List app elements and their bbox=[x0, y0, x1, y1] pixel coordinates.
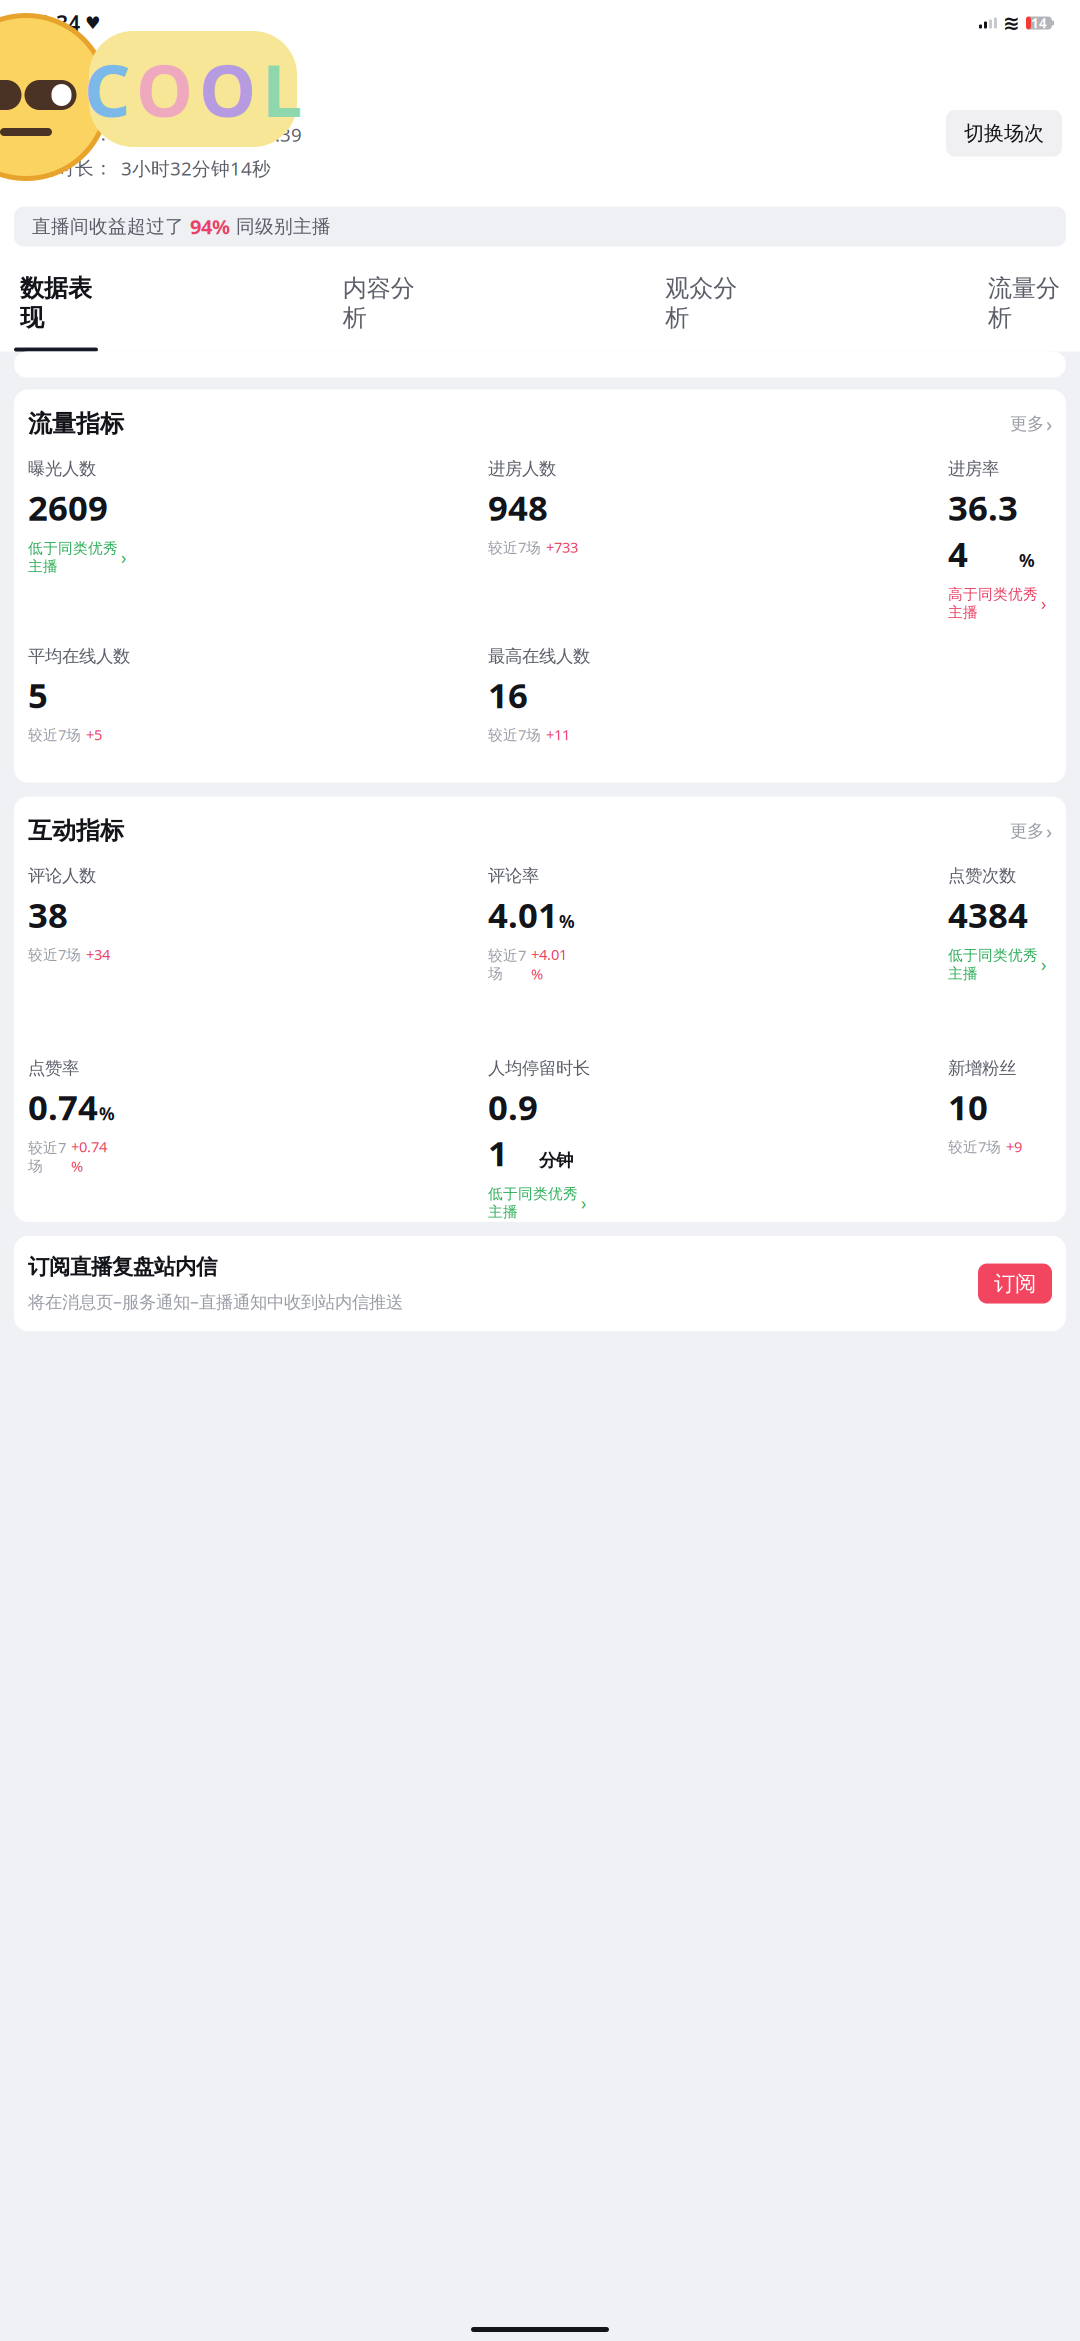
staticText: 直播间收益超过了 bbox=[32, 215, 190, 238]
staticText: +11 bbox=[546, 725, 570, 744]
staticText: % bbox=[559, 910, 575, 933]
button[interactable]: 更多 bbox=[1000, 815, 1052, 847]
button[interactable]: 订阅 bbox=[978, 1263, 1052, 1303]
staticText: 切换场次 bbox=[964, 121, 1044, 146]
staticText: 13:34 bbox=[26, 9, 80, 37]
staticText: 14 bbox=[1031, 14, 1047, 32]
staticText: › bbox=[121, 546, 126, 569]
staticText: 2609 bbox=[28, 484, 108, 530]
staticText: ♥ bbox=[85, 13, 101, 33]
staticText: 16 bbox=[488, 672, 528, 718]
staticText: › bbox=[1041, 592, 1046, 615]
staticText: 流量分析 bbox=[988, 274, 1060, 333]
staticText: 最高在线人数 bbox=[488, 645, 590, 667]
button[interactable]: 流量分析 bbox=[982, 261, 1066, 346]
button[interactable]: 内容分析 bbox=[337, 261, 421, 346]
staticText: O bbox=[136, 41, 193, 137]
staticText: 更多 bbox=[1010, 413, 1044, 434]
staticText: 4384 bbox=[948, 891, 1028, 937]
staticText: 较近7场 bbox=[488, 945, 526, 983]
staticText: 开播时长： bbox=[18, 157, 113, 180]
staticText: 点赞次数 bbox=[948, 865, 1016, 886]
staticText: 低于同类优秀主播 bbox=[488, 1185, 578, 1221]
button[interactable]: 切换场次 bbox=[946, 110, 1062, 157]
staticText: › bbox=[1041, 953, 1046, 976]
staticText: 进房率 bbox=[948, 458, 999, 479]
staticText: +733 bbox=[546, 537, 578, 557]
staticText: 10 bbox=[948, 1084, 988, 1130]
staticText: 36.34 bbox=[948, 484, 1018, 576]
staticText: 流量指标 bbox=[28, 409, 124, 439]
staticText: 0.91 bbox=[488, 1084, 538, 1176]
staticText: % bbox=[1019, 549, 1035, 572]
button[interactable]: 低于同类优秀主播 bbox=[488, 1183, 586, 1223]
staticText: O bbox=[199, 41, 256, 137]
staticText: 2025-10-10 23:47:39 bbox=[121, 122, 302, 147]
staticText: 互动指标 bbox=[28, 816, 124, 846]
button[interactable]: 低于同类优秀主播 bbox=[948, 944, 1046, 984]
staticText: 点赞率 bbox=[28, 1057, 79, 1079]
staticText: › bbox=[1046, 818, 1052, 844]
staticText: 进房人数 bbox=[488, 458, 556, 479]
staticText: 低于同类优秀主播 bbox=[948, 946, 1038, 982]
staticText: C bbox=[84, 41, 130, 137]
staticText: 开播时间： bbox=[18, 123, 113, 146]
staticText: 较近7场 bbox=[28, 1138, 66, 1175]
button[interactable]: 更多 bbox=[1000, 407, 1052, 440]
staticText: 低于同类优秀主播 bbox=[28, 539, 118, 575]
staticText: 评论率 bbox=[488, 865, 539, 886]
staticText: +0.74% bbox=[71, 1137, 107, 1176]
staticText: 评论人数 bbox=[28, 865, 96, 886]
staticText: 较近7场 bbox=[28, 725, 81, 744]
staticText: 更多 bbox=[1010, 820, 1044, 841]
staticText: 新增粉丝 bbox=[948, 1057, 1016, 1079]
staticText: 订阅 bbox=[994, 1270, 1036, 1297]
button[interactable]: 数据表现 bbox=[14, 261, 98, 346]
staticText: +34 bbox=[86, 944, 110, 964]
staticText: 948 bbox=[488, 484, 548, 530]
staticText: 曝光人数 bbox=[28, 458, 96, 479]
staticText: 将在消息页–服务通知–直播通知中收到站内信推送 bbox=[28, 1290, 403, 1313]
staticText: 高于同类优秀主播 bbox=[948, 585, 1038, 621]
staticText: 内容分析 bbox=[343, 274, 415, 333]
staticText: 订阅直播复盘站内信 bbox=[28, 1254, 217, 1280]
staticText: L bbox=[262, 41, 302, 137]
staticText: +9 bbox=[1006, 1137, 1022, 1156]
staticText: 较近7场 bbox=[948, 1137, 1001, 1156]
staticText: 分钟 bbox=[539, 1150, 573, 1171]
staticText: › bbox=[581, 1191, 586, 1214]
staticText: 观众分析 bbox=[665, 274, 737, 333]
staticText: 0.74 bbox=[28, 1084, 98, 1130]
button[interactable]: 观众分析 bbox=[659, 261, 743, 346]
staticText: › bbox=[1046, 410, 1052, 437]
staticText: 3小时32分钟14秒 bbox=[121, 156, 271, 181]
button[interactable]: 低于同类优秀主播 bbox=[28, 537, 126, 577]
staticText: 较近7场 bbox=[28, 944, 81, 964]
staticText: +4.01% bbox=[531, 944, 567, 983]
staticText: +5 bbox=[86, 725, 102, 744]
staticText: ≋ bbox=[1003, 12, 1020, 34]
button[interactable]: 高于同类优秀主播 bbox=[948, 583, 1046, 623]
staticText: 94% bbox=[190, 213, 230, 240]
staticText: 较近7场 bbox=[488, 537, 541, 557]
staticText: % bbox=[99, 1102, 115, 1125]
staticText: 5 bbox=[28, 672, 48, 718]
staticText: 4.01 bbox=[488, 891, 558, 937]
staticText: 人均停留时长 bbox=[488, 1057, 590, 1079]
staticText: 平均在线人数 bbox=[28, 645, 130, 667]
staticText: 同级别主播 bbox=[230, 215, 331, 238]
staticText: 38 bbox=[28, 891, 68, 937]
staticText: 较近7场 bbox=[488, 725, 541, 744]
staticText: 数据表现 bbox=[20, 274, 92, 333]
